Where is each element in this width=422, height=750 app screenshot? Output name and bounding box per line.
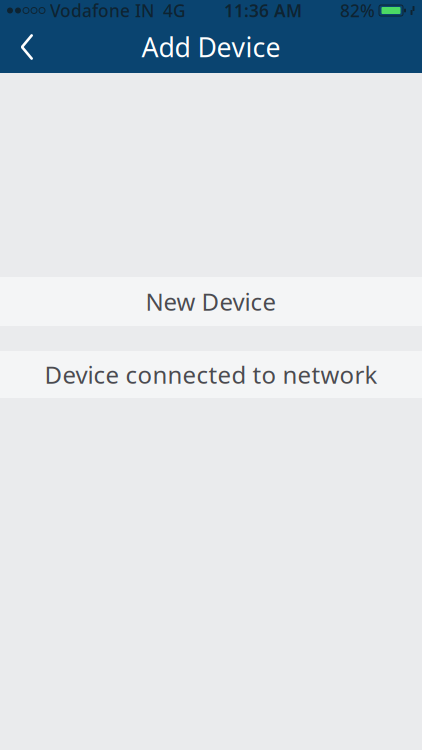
staticText: 82% (340, 0, 375, 22)
staticText: Vodafone IN (50, 0, 154, 22)
button[interactable]: New Device (0, 277, 422, 326)
staticText: Add Device (141, 29, 280, 65)
staticText: 4G (163, 0, 186, 22)
staticText: New Device (145, 286, 276, 317)
staticText: 11:36 AM (224, 0, 302, 22)
button[interactable]: Back (0, 21, 54, 73)
button[interactable]: Device connected to network (0, 351, 422, 398)
staticText: Device connected to network (44, 359, 377, 390)
